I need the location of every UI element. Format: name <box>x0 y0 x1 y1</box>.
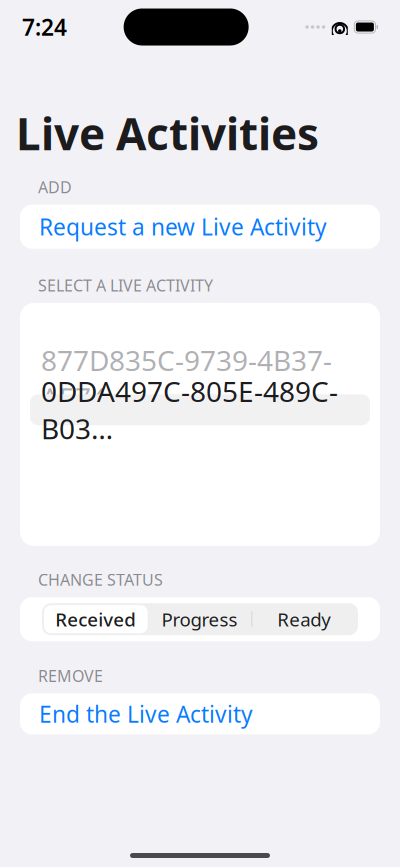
button[interactable]: 0DDA497C-805E-489C-B03… <box>30 394 370 425</box>
button[interactable]: Ready <box>252 605 356 633</box>
staticText: End the Live Activity <box>39 699 253 729</box>
staticText: 7:24 <box>22 12 67 42</box>
staticText: Progress <box>161 607 237 632</box>
button[interactable]: Request a new Live Activity <box>20 205 380 249</box>
button[interactable]: End the Live Activity <box>20 693 380 734</box>
staticText: 0DDA497C-805E-489C-B03… <box>41 373 338 447</box>
staticText: Ready <box>277 607 331 632</box>
staticText: ADD <box>38 176 72 198</box>
staticText: Received <box>55 607 136 632</box>
staticText: CHANGE STATUS <box>38 569 163 590</box>
staticText: SELECT A LIVE ACTIVITY <box>38 275 213 296</box>
button[interactable]: 877D835C-9739-4B37-A574… <box>30 363 370 394</box>
staticText: Request a new Live Activity <box>39 212 327 242</box>
staticText: 877D835C-9739-4B37-A574… <box>41 342 332 416</box>
staticText: REMOVE <box>38 665 103 686</box>
button[interactable]: Received <box>44 605 148 633</box>
staticText: Live Activities <box>16 104 319 162</box>
button[interactable]: Progress <box>148 605 251 633</box>
